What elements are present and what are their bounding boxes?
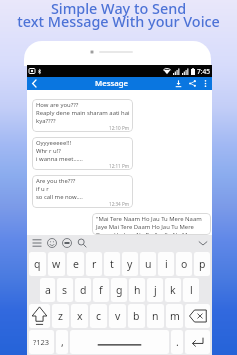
button[interactable]: Oyyyeeeee!!! [32,137,133,170]
staticText: Reaply dene main sharam aati hai [36,109,130,117]
button[interactable]: s [57,278,73,302]
staticText: z [58,309,63,323]
staticText: Jaye Mai Tere Daam Ho Jau Tu Mere [96,223,194,231]
staticText: e [73,257,79,271]
staticText: o [181,257,188,271]
staticText: a [45,283,51,297]
button[interactable]: Are you the??? [32,175,133,208]
staticText: k [170,283,176,297]
staticText: c [96,309,102,323]
button[interactable]: e [67,252,84,276]
staticText: Simple Way to Send text Message With you… [0,0,237,31]
button[interactable]: l [183,278,199,302]
button[interactable]: Backspace [185,304,210,328]
button[interactable]: p [194,252,210,276]
button[interactable]: u [140,252,156,276]
staticText: i [165,257,168,271]
staticText: Are you the??? [36,177,76,185]
button[interactable]: Collapse keyboard [195,235,210,251]
button[interactable]: y [122,252,138,276]
button[interactable]: z [52,304,69,328]
staticText: 7:45 [197,67,210,76]
button[interactable]: More options [199,77,211,90]
button[interactable]: r [86,252,102,276]
button[interactable]: Menu [29,235,44,251]
button[interactable]: "Mai Tere Naam Ho Jau Tu Mere Naam Ho [92,213,211,235]
button[interactable]: i [158,252,174,276]
staticText: if u r [36,185,49,193]
button[interactable]: Search [74,235,89,251]
button[interactable]: x [71,304,88,328]
staticText: l [190,283,193,297]
staticText: ?123 [33,337,50,347]
staticText: i wanna meet...... [36,155,83,163]
button[interactable]: Emoji [44,235,59,251]
staticText: r [92,257,97,271]
staticText: j [154,283,157,297]
button[interactable]: j [147,278,163,302]
staticText: p [199,257,206,271]
button[interactable]: Back [27,77,41,90]
staticText: n [152,309,159,323]
button[interactable]: . [171,330,183,354]
button[interactable]: a [40,278,55,302]
staticText: t [110,257,114,271]
staticText: b [133,309,140,323]
button[interactable]: k [165,278,181,302]
staticText: u [145,257,152,271]
button[interactable]: q [29,252,46,276]
staticText: m [170,309,180,323]
staticText: f [99,283,103,297]
staticText: h [134,283,141,297]
button[interactable]: o [176,252,192,276]
button[interactable]: g [111,278,127,302]
staticText: How are you??? [36,101,79,109]
button[interactable]: Space [70,330,169,354]
staticText: x [77,309,83,323]
staticText: so call me now.... [36,193,83,201]
staticText: kya???? [36,117,56,125]
staticText: Oyyyeeeee!!! [36,139,71,147]
button[interactable]: Enter [185,330,210,354]
staticText: Whr r u!? [36,147,61,155]
button[interactable]: Download [171,77,185,90]
staticText: s [62,283,68,297]
button[interactable]: Share [185,77,199,90]
button[interactable]: c [90,304,107,328]
staticText: 12:34 Pm [109,201,130,207]
button[interactable]: t [104,252,120,276]
button[interactable]: n [147,304,164,328]
button[interactable]: m [166,304,183,328]
staticText: g [116,283,123,297]
button[interactable]: ?123 [29,330,54,354]
button[interactable]: d [75,278,91,302]
staticText: v [115,309,121,323]
staticText: Daam Ho Jaye Na Radha Sa Na Meera [96,231,200,234]
button[interactable]: Shift [29,304,50,328]
button[interactable]: f [93,278,109,302]
button[interactable]: , [56,330,68,354]
button[interactable]: GIF [59,235,74,251]
staticText: 12:10 Pm [109,125,130,131]
staticText: d [80,283,87,297]
button[interactable]: h [129,278,145,302]
staticText: "Mai Tere Naam Ho Jau Tu Mere Naam Ho [96,215,208,223]
staticText: 12:11 Pm [109,163,130,169]
button[interactable]: w [48,252,65,276]
button[interactable]: How are you??? [32,99,133,132]
staticText: . [176,335,179,349]
button[interactable]: b [128,304,145,328]
staticText: q [34,257,41,271]
staticText: w [52,257,61,271]
staticText: , [61,335,64,349]
staticText: y [127,257,133,271]
button[interactable]: v [109,304,126,328]
staticText: Message [95,78,128,89]
